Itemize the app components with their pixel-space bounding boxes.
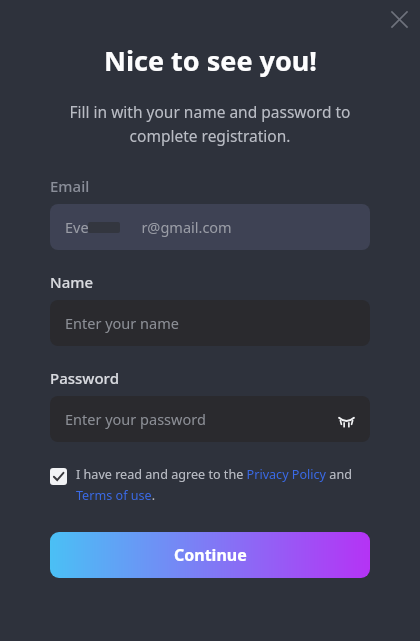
staticText: Fill in with your name and password to c… [44, 101, 376, 146]
button[interactable]: Eve r@gmail.com [50, 204, 370, 250]
button[interactable]: Enter your name [50, 300, 370, 346]
button[interactable]: I have read and agree to the Privacy Pol… [76, 466, 370, 504]
staticText: Enter your name [65, 313, 179, 333]
staticText: Eve r@gmail.com [65, 217, 232, 237]
staticText: Name [50, 272, 94, 292]
button[interactable]: Enter your password [50, 396, 370, 442]
staticText: Nice to see you! [104, 42, 317, 79]
staticText: Password [50, 368, 119, 388]
staticText: Continue [174, 544, 247, 566]
staticText: Email [50, 176, 90, 196]
button[interactable]: Show password [330, 403, 362, 435]
button[interactable]: Close [381, 1, 417, 37]
button[interactable]: Continue [50, 532, 370, 578]
button[interactable]: I agree checkbox [50, 468, 67, 485]
staticText: Enter your password [65, 409, 206, 429]
